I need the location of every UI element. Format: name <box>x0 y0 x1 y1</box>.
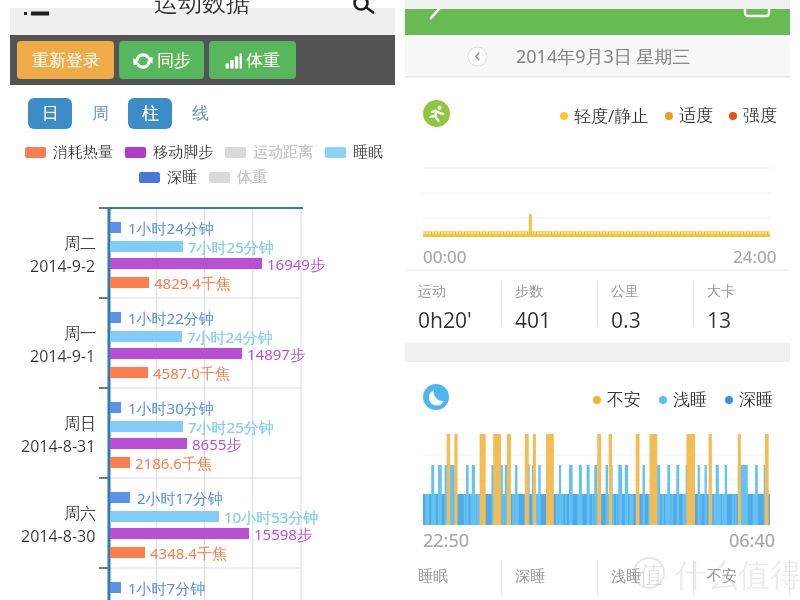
staticText: 什么值得买 <box>674 555 800 595</box>
button[interactable]: 重新登录 <box>17 41 114 79</box>
staticText: 移动脚步 <box>153 143 213 162</box>
staticText: 周日 <box>64 414 96 434</box>
button[interactable]: 浅睡 <box>659 389 707 410</box>
staticText: 深睡 <box>739 389 773 410</box>
staticText: 15598步 <box>254 524 312 544</box>
staticText: 1小时30分钟 <box>128 398 214 418</box>
staticText: 0.3 <box>611 306 641 335</box>
button[interactable]: 大卡 <box>694 271 790 335</box>
button[interactable]: 深睡 <box>502 554 598 600</box>
button[interactable]: 日 <box>28 98 72 129</box>
staticText: 周二 <box>64 234 96 254</box>
staticText: 2014-8-31 <box>21 435 96 457</box>
staticText: 周六 <box>64 504 96 524</box>
button[interactable]: 深睡 <box>139 168 197 187</box>
button[interactable]: 体重 <box>209 41 296 79</box>
staticText: 13 <box>707 306 732 335</box>
button[interactable]: 不安 <box>694 554 790 600</box>
staticText: 不安 <box>707 567 737 586</box>
staticText: 周 <box>92 103 109 124</box>
staticText: 重新登录 <box>32 50 100 71</box>
staticText: 浅睡 <box>673 389 707 410</box>
staticText: 7小时24分钟 <box>187 327 273 347</box>
button[interactable]: Previous day <box>467 46 488 67</box>
button[interactable]: 同步 <box>119 41 204 79</box>
staticText: 同步 <box>157 50 191 71</box>
button[interactable]: 浅睡 <box>598 554 694 600</box>
staticText: 柱 <box>142 103 159 124</box>
staticText: 7小时25分钟 <box>188 417 274 437</box>
button[interactable]: 移动脚步 <box>125 143 213 162</box>
button[interactable]: 周 <box>78 98 122 129</box>
staticText: 线 <box>192 103 209 124</box>
staticText: 2014年9月3日 星期三 <box>516 44 691 69</box>
staticText: 轻度/静止 <box>574 104 649 127</box>
staticText: 值 <box>639 560 663 590</box>
staticText: 步数 <box>515 283 543 301</box>
staticText: 16949步 <box>267 254 325 274</box>
staticText: 00:00 <box>423 245 467 268</box>
staticText: 2小时17分钟 <box>137 488 223 508</box>
staticText: 睡眠 <box>353 143 383 162</box>
staticText: 不安 <box>607 389 641 410</box>
button[interactable]: Back <box>419 9 451 26</box>
button[interactable]: 公里 <box>598 271 694 335</box>
button[interactable]: 适度 <box>665 105 713 126</box>
staticText: 4348.4千焦 <box>150 543 227 563</box>
staticText: 公里 <box>611 283 639 301</box>
staticText: 适度 <box>679 105 713 126</box>
staticText: 大卡 <box>707 283 735 301</box>
staticText: 1小时24分钟 <box>128 218 214 238</box>
button[interactable]: 不安 <box>593 389 641 410</box>
staticText: 1小时22分钟 <box>128 308 214 328</box>
staticText: 2186.6千焦 <box>135 453 212 473</box>
staticText: 运动数据 <box>154 0 250 18</box>
staticText: 24:00 <box>733 245 777 268</box>
staticText: 22:50 <box>423 528 470 553</box>
staticText: 运动 <box>418 283 446 301</box>
button[interactable]: 柱 <box>128 98 172 129</box>
staticText: 浅睡 <box>611 567 641 586</box>
button[interactable]: 步数 <box>502 271 598 335</box>
staticText: 运动距离 <box>253 143 313 162</box>
staticText: 周一 <box>64 324 96 344</box>
staticText: 8655步 <box>192 434 242 454</box>
button[interactable]: Search <box>354 0 386 26</box>
staticText: 7小时25分钟 <box>188 237 274 257</box>
staticText: 消耗热量 <box>53 143 113 162</box>
staticText: 401 <box>515 306 552 335</box>
button[interactable]: 轻度/静止 <box>560 104 649 127</box>
staticText: 0h20' <box>418 306 472 335</box>
staticText: 1小时7分钟 <box>128 578 206 598</box>
staticText: 强度 <box>743 105 777 126</box>
button[interactable]: 强度 <box>729 105 777 126</box>
staticText: 4829.4千焦 <box>154 273 231 293</box>
staticText: 4587.0千焦 <box>153 363 230 383</box>
button[interactable]: Calendar <box>742 9 772 16</box>
button[interactable]: 深睡 <box>725 389 773 410</box>
button[interactable]: 运动距离 <box>225 143 313 162</box>
staticText: 10小时53分钟 <box>224 507 319 527</box>
staticText: 2014-8-30 <box>21 525 96 547</box>
staticText: 睡眠 <box>418 567 448 586</box>
button[interactable]: 体重 <box>209 168 267 187</box>
staticText: 06:40 <box>729 528 776 553</box>
staticText: 14897步 <box>247 344 305 364</box>
staticText: 2014-9-1 <box>30 345 96 367</box>
button[interactable]: 线 <box>178 98 222 129</box>
staticText: 体重 <box>246 50 280 71</box>
button[interactable]: 运动 <box>405 271 502 335</box>
staticText: 日 <box>42 103 59 124</box>
staticText: 深睡 <box>515 567 545 586</box>
button[interactable]: 消耗热量 <box>25 143 113 162</box>
staticText: 体重 <box>237 168 267 187</box>
staticText: 2014-9-2 <box>30 255 96 277</box>
staticText: 深睡 <box>167 168 197 187</box>
button[interactable]: 睡眠 <box>325 143 383 162</box>
button[interactable]: 睡眠 <box>405 554 502 600</box>
